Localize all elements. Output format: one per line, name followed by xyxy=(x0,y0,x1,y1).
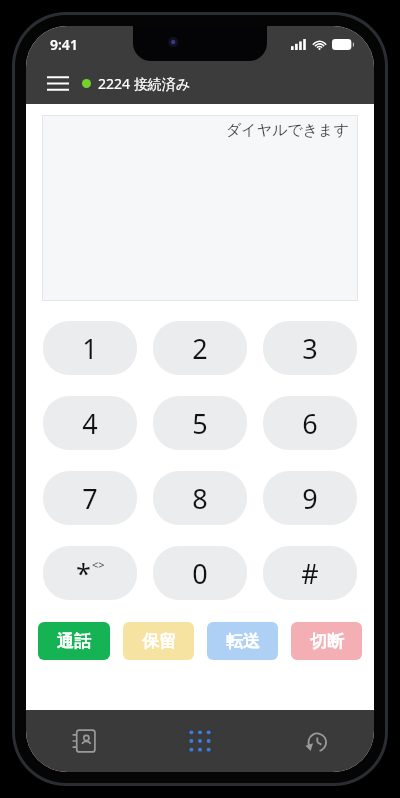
button[interactable]: Keypad xyxy=(142,710,258,772)
staticText: 通話 xyxy=(57,631,91,652)
button[interactable]: 0 xyxy=(153,546,247,600)
button[interactable]: # xyxy=(263,546,357,600)
button[interactable]: 1 xyxy=(43,321,137,375)
staticText: 4 xyxy=(82,405,98,442)
button[interactable]: 5 xyxy=(153,396,247,450)
staticText: 9:41 xyxy=(50,35,78,54)
staticText: 保留 xyxy=(142,631,176,652)
staticText: 5 xyxy=(192,405,208,442)
staticText: 1 xyxy=(82,330,98,367)
button[interactable]: 通話 xyxy=(38,622,110,660)
button[interactable]: 転送 xyxy=(207,622,278,660)
button[interactable]: * xyxy=(43,546,137,600)
button[interactable]: 6 xyxy=(263,396,357,450)
button[interactable]: 8 xyxy=(153,471,247,525)
staticText: * xyxy=(76,555,91,592)
staticText: 転送 xyxy=(226,631,260,652)
staticText: <> xyxy=(92,557,105,572)
staticText: 7 xyxy=(82,480,98,517)
button[interactable]: 4 xyxy=(43,396,137,450)
button[interactable]: 切断 xyxy=(291,622,362,660)
button[interactable]: Menu xyxy=(36,62,80,104)
staticText: 切断 xyxy=(310,631,344,652)
staticText: 3 xyxy=(302,330,318,367)
button[interactable]: Contacts xyxy=(26,710,142,772)
staticText: 2224 接続済み xyxy=(98,74,190,93)
staticText: 0 xyxy=(192,555,208,592)
button[interactable]: 2 xyxy=(153,321,247,375)
staticText: 2 xyxy=(192,330,208,367)
button[interactable]: 7 xyxy=(43,471,137,525)
staticText: 6 xyxy=(302,405,318,442)
staticText: 8 xyxy=(192,480,208,517)
staticText: # xyxy=(301,555,319,592)
staticText: 9 xyxy=(302,480,318,517)
staticText: ダイヤルできます xyxy=(226,121,349,140)
button[interactable]: 9 xyxy=(263,471,357,525)
button[interactable]: 保留 xyxy=(123,622,194,660)
button[interactable]: 3 xyxy=(263,321,357,375)
button[interactable]: History xyxy=(258,710,374,772)
